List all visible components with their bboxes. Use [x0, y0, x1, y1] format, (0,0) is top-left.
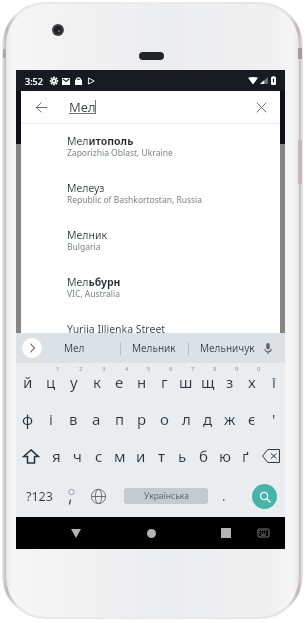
staticText: щ: [201, 372, 215, 392]
staticText: 9: [235, 365, 239, 373]
staticText: Мелитополь: [67, 134, 134, 148]
button[interactable]: Recents: [210, 517, 242, 549]
button[interactable]: г: [153, 363, 175, 400]
staticText: ь: [178, 446, 187, 466]
button[interactable]: Clear: [249, 95, 273, 119]
staticText: к: [93, 372, 101, 392]
button[interactable]: і: [39, 400, 62, 437]
button[interactable]: Мельничук: [188, 333, 266, 363]
button[interactable]: Back: [60, 517, 92, 549]
button[interactable]: з: [219, 363, 241, 400]
button[interactable]: Change language: [86, 484, 110, 508]
staticText: ?123: [26, 488, 53, 505]
button[interactable]: Мелник: [21, 219, 280, 266]
staticText: 0: [257, 365, 261, 373]
button[interactable]: Voice input: [260, 340, 276, 356]
button[interactable]: ч: [67, 437, 88, 475]
button[interactable]: с: [88, 437, 109, 475]
button[interactable]: ґ: [235, 437, 256, 475]
staticText: Bulgaria: [67, 241, 101, 253]
staticText: ч: [73, 446, 82, 466]
staticText: Мельник: [132, 341, 176, 355]
button[interactable]: м: [109, 437, 130, 475]
button[interactable]: х: [241, 363, 263, 400]
staticText: с: [95, 446, 103, 466]
button[interactable]: о: [153, 400, 175, 437]
button[interactable]: и: [130, 437, 151, 475]
staticText: ': [272, 409, 276, 429]
staticText: в: [69, 409, 78, 429]
button[interactable]: Мельник: [120, 333, 187, 363]
staticText: ф: [22, 409, 34, 429]
button[interactable]: Українська: [124, 488, 208, 504]
staticText: 3:52: [25, 75, 43, 87]
staticText: 3: [102, 365, 106, 373]
button[interactable]: п: [108, 400, 131, 437]
button[interactable]: ш: [175, 363, 197, 400]
button[interactable]: ц: [39, 363, 62, 400]
button[interactable]: н: [131, 363, 153, 400]
staticText: Мел: [64, 341, 85, 355]
button[interactable]: Search field: [21, 91, 280, 123]
button[interactable]: в: [62, 400, 85, 437]
button[interactable]: й: [16, 363, 39, 400]
button[interactable]: Yuriia Illienka Street: [21, 313, 280, 360]
staticText: і: [49, 409, 53, 429]
button[interactable]: щ: [197, 363, 219, 400]
staticText: ґ: [242, 446, 249, 466]
staticText: р: [137, 409, 147, 429]
button[interactable]: More suggestions: [22, 338, 42, 358]
button[interactable]: т: [151, 437, 172, 475]
button[interactable]: Switch keyboard: [251, 517, 275, 549]
button[interactable]: Мел: [42, 333, 106, 363]
staticText: з: [226, 372, 234, 392]
button[interactable]: б: [193, 437, 214, 475]
staticText: 4: [125, 365, 129, 373]
staticText: Мелеуз: [67, 181, 105, 195]
button[interactable]: Мельбурн: [21, 266, 280, 313]
staticText: Українська: [144, 490, 189, 502]
staticText: 6: [169, 365, 173, 373]
button[interactable]: Back: [28, 94, 54, 120]
button[interactable]: Home: [135, 517, 167, 549]
staticText: ц: [46, 372, 56, 392]
button[interactable]: е: [108, 363, 131, 400]
staticText: я: [52, 446, 61, 466]
button[interactable]: Мелеуз: [21, 172, 280, 219]
button[interactable]: д: [197, 400, 219, 437]
button[interactable]: ж: [219, 400, 241, 437]
staticText: д: [203, 409, 213, 429]
button[interactable]: ': [263, 400, 285, 437]
button[interactable]: ф: [16, 400, 39, 437]
button[interactable]: а: [85, 400, 108, 437]
staticText: є: [248, 409, 256, 429]
staticText: ж: [224, 409, 236, 429]
button[interactable]: к: [85, 363, 108, 400]
button[interactable]: Мелитополь: [21, 125, 280, 172]
staticText: ю: [219, 446, 231, 466]
button[interactable]: у: [62, 363, 85, 400]
button[interactable]: Backspace: [256, 437, 285, 475]
button[interactable]: р: [131, 400, 153, 437]
button[interactable]: .: [214, 486, 234, 506]
staticText: п: [115, 409, 125, 429]
button[interactable]: Shift: [16, 437, 46, 475]
staticText: Zaporizhia Oblast, Ukraine: [67, 147, 173, 159]
button[interactable]: Emoji: [60, 483, 82, 509]
button[interactable]: є: [241, 400, 263, 437]
staticText: 2: [79, 365, 83, 373]
staticText: у: [70, 372, 78, 392]
button[interactable]: я: [46, 437, 67, 475]
staticText: л: [182, 409, 191, 429]
button[interactable]: ?123: [21, 479, 58, 513]
staticText: Мельничук: [200, 341, 255, 355]
staticText: Republic of Bashkortostan, Russia: [67, 194, 203, 206]
button[interactable]: ь: [172, 437, 193, 475]
staticText: 1: [56, 365, 60, 373]
staticText: ш: [179, 372, 193, 392]
button[interactable]: Search: [252, 484, 277, 509]
button[interactable]: ї: [263, 363, 285, 400]
staticText: а: [92, 409, 101, 429]
button[interactable]: ю: [214, 437, 235, 475]
button[interactable]: л: [175, 400, 197, 437]
